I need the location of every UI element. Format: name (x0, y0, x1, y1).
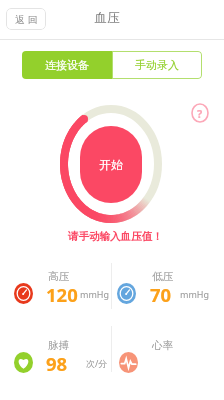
staticText: 脉搏 (48, 339, 69, 352)
button[interactable]: 手动录入 (112, 51, 202, 79)
button[interactable]: 开始 (60, 105, 162, 223)
staticText: ? (197, 106, 203, 121)
button[interactable] (113, 261, 213, 305)
staticText: 连接设备 (45, 58, 89, 72)
staticText: 手动录入 (135, 58, 179, 72)
button[interactable]: 返 回 (6, 8, 46, 30)
staticText: 请手动输入血压值！ (68, 230, 163, 243)
staticText: mmHg (80, 288, 110, 300)
staticText: 心率 (152, 339, 173, 352)
button[interactable] (10, 330, 110, 374)
button[interactable] (115, 330, 185, 374)
staticText: 98 (46, 351, 68, 376)
staticText: 70 (150, 282, 172, 307)
staticText: 高压 (48, 270, 69, 283)
button[interactable] (10, 261, 110, 305)
button[interactable]: 帮助 (191, 103, 209, 123)
staticText: 血压 (94, 10, 120, 26)
button[interactable]: 连接设备 (22, 51, 112, 79)
staticText: 开始 (99, 157, 123, 172)
staticText: 低压 (152, 270, 173, 283)
staticText: 返 回 (15, 13, 38, 26)
staticText: 次/分 (86, 357, 108, 369)
staticText: mmHg (180, 288, 210, 300)
staticText: 120 (46, 282, 78, 307)
